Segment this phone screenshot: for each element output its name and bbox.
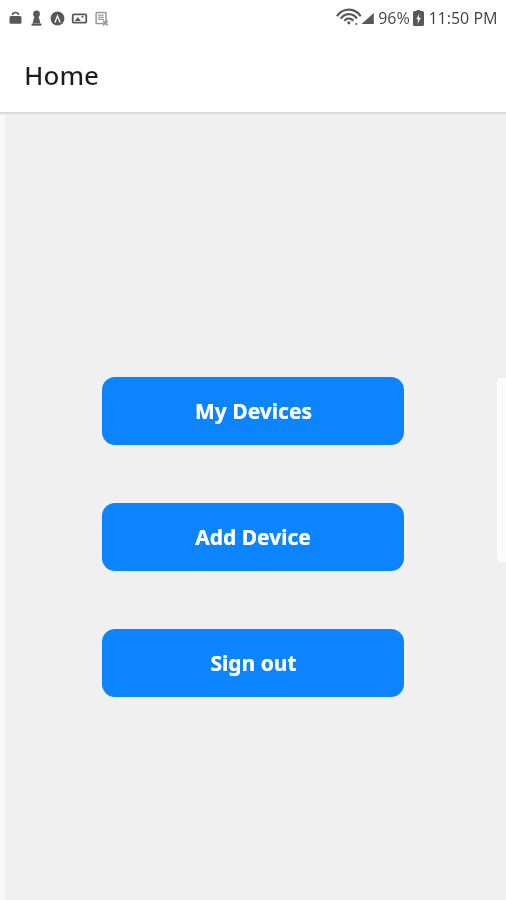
button[interactable]: Sign out [102, 629, 404, 697]
staticText: Home [24, 57, 99, 92]
staticText: Add Device [195, 523, 311, 552]
button[interactable]: Add Device [102, 503, 404, 571]
staticText: 11:50 PM [428, 7, 498, 29]
button[interactable]: My Devices [102, 377, 404, 445]
staticText: Sign out [210, 649, 297, 678]
staticText: 96% [378, 7, 410, 29]
staticText: My Devices [195, 397, 312, 426]
